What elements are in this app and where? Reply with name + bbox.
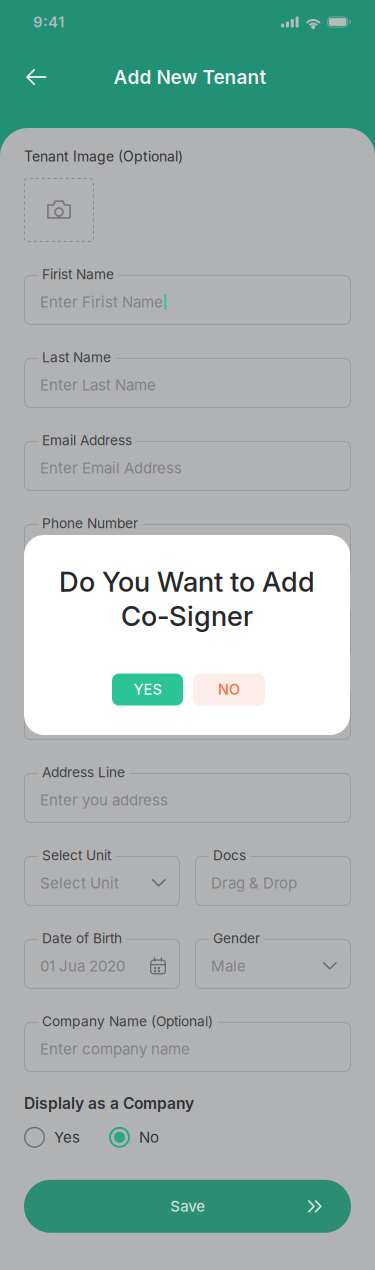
button[interactable]: Back	[0, 55, 63, 99]
button[interactable]: Enter Firist Name	[24, 268, 351, 325]
staticText: YES	[133, 681, 161, 698]
staticText: Enter you address	[40, 791, 168, 809]
button[interactable]: No	[109, 1127, 159, 1148]
staticText: Company Name (Optional)	[42, 1013, 213, 1029]
staticText: Do You Want to Add	[59, 565, 315, 598]
button[interactable]: Male	[195, 932, 351, 989]
button[interactable]: YES	[112, 673, 183, 705]
staticText: Enter Password	[40, 625, 151, 643]
staticText: Date of Birth	[42, 930, 122, 946]
staticText: 9:41	[33, 13, 64, 31]
button[interactable]: Add tenant image	[24, 178, 94, 242]
staticText: Select Unit	[40, 874, 119, 892]
button[interactable]: Save	[24, 1180, 351, 1233]
staticText: Tenant Image (Optional)	[24, 148, 183, 165]
staticText: 01 Jua 2020	[40, 957, 125, 975]
staticText: Last Name	[42, 349, 111, 365]
button[interactable]: Enter Password	[24, 600, 351, 657]
button[interactable]: Select Unit	[24, 849, 180, 906]
staticText: Save	[170, 1197, 205, 1215]
staticText: Enter Last Name	[40, 376, 156, 394]
staticText: No	[139, 1128, 159, 1146]
button[interactable]: Enter company name	[24, 1015, 351, 1072]
staticText: Co-Signer	[121, 599, 253, 633]
staticText: Select Unit	[42, 847, 111, 863]
button[interactable]: Drag & Drop	[195, 849, 351, 906]
staticText: Address Line	[42, 764, 125, 780]
button[interactable]: 01 Jua 2020	[24, 932, 180, 989]
staticText: Email Address	[42, 432, 132, 448]
staticText: Firist Name	[42, 266, 114, 282]
staticText: NO	[218, 681, 240, 698]
staticText: Docs	[213, 847, 246, 863]
staticText: Enter company name	[40, 1040, 190, 1058]
staticText: Phone Number	[42, 515, 138, 531]
button[interactable]: Enter Email Address	[24, 434, 351, 491]
staticText: Enter Firist Name	[40, 293, 163, 311]
button[interactable]: Enter Last Name	[24, 351, 351, 408]
staticText: Yes	[54, 1128, 80, 1146]
staticText: Enter Email Address	[40, 459, 182, 477]
staticText: Add New Tenant	[113, 65, 266, 88]
staticText: Confirm Password	[42, 681, 160, 697]
button[interactable]: Yes	[24, 1127, 80, 1148]
staticText: Gender	[213, 930, 260, 946]
button[interactable]: Enter you address	[24, 766, 351, 823]
staticText: Male	[211, 957, 246, 975]
button[interactable]: Enter Phone Number	[24, 517, 351, 574]
staticText: Displaly as a Company	[24, 1094, 194, 1113]
staticText: Drag & Drop	[211, 874, 297, 892]
button[interactable]: Re-enter Password	[24, 683, 351, 740]
button[interactable]: NO	[193, 673, 265, 705]
